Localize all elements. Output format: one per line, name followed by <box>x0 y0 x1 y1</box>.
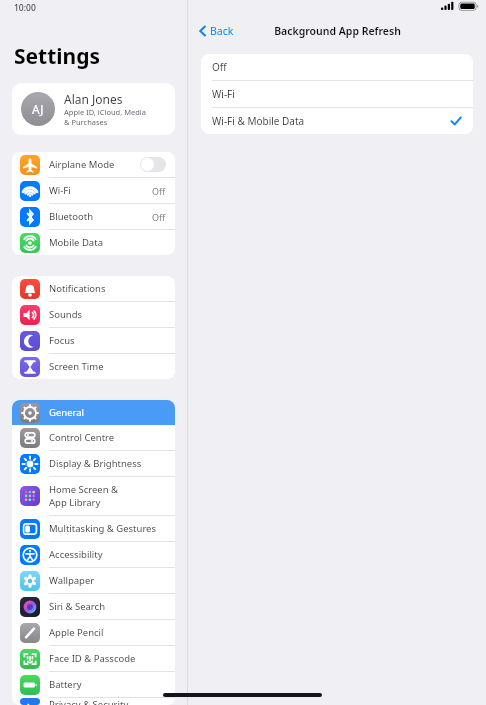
staticText: Wi-Fi <box>49 184 71 197</box>
staticText: Wi-Fi & Mobile Data <box>212 114 450 128</box>
staticText: Siri & Search <box>49 600 106 613</box>
button[interactable]: Sounds <box>12 302 175 327</box>
staticText: Off <box>212 60 462 74</box>
staticText: Wi-Fi <box>212 87 462 101</box>
staticText: Display & Brightness <box>49 457 142 470</box>
staticText: AJ <box>32 101 44 117</box>
button[interactable]: Control Centre <box>12 425 175 450</box>
button[interactable] <box>140 157 166 172</box>
button[interactable]: Siri & Search <box>12 594 175 619</box>
staticText: Accessibility <box>49 548 103 561</box>
staticText: 10:00 <box>14 2 36 14</box>
button[interactable]: Notifications <box>12 276 175 301</box>
button[interactable]: Battery <box>12 672 175 697</box>
staticText: Settings <box>14 42 101 71</box>
staticText: Bluetooth <box>49 210 94 223</box>
button[interactable]: Wi-Fi <box>12 178 175 203</box>
button[interactable]: Apple Pencil <box>12 620 175 645</box>
button[interactable]: Off <box>201 54 473 80</box>
button[interactable]: Mobile Data <box>12 230 175 255</box>
button[interactable]: Back <box>196 21 237 41</box>
staticText: Home Screen & <box>49 483 119 496</box>
button[interactable]: Focus <box>12 328 175 353</box>
staticText: Off <box>152 185 166 197</box>
staticText: Sounds <box>49 308 83 321</box>
staticText: Privacy & Security <box>49 698 129 705</box>
staticText: Wallpaper <box>49 574 95 587</box>
button[interactable]: Accessibility <box>12 542 175 567</box>
staticText: Background App Refresh <box>274 24 401 38</box>
staticText: Apple Pencil <box>49 626 104 639</box>
button[interactable]: Wi-Fi <box>201 81 473 107</box>
staticText: Battery <box>49 678 82 691</box>
button[interactable]: Face ID & Passcode <box>12 646 175 671</box>
button[interactable]: AJ <box>12 83 175 135</box>
button[interactable]: Privacy & Security <box>12 698 175 705</box>
staticText: Apple ID, iCloud, Media & Purchases <box>64 107 146 127</box>
button[interactable]: Airplane Mode <box>12 152 175 177</box>
staticText: Control Centre <box>49 431 115 444</box>
staticText: Notifications <box>49 282 106 295</box>
staticText: Off <box>152 211 166 223</box>
staticText: General <box>49 406 85 419</box>
staticText: Alan Jones <box>64 91 123 107</box>
button[interactable]: Display & Brightness <box>12 451 175 476</box>
other: Selected <box>450 115 462 127</box>
staticText: Focus <box>49 334 75 347</box>
button[interactable]: General <box>12 400 175 425</box>
staticText: Screen Time <box>49 360 104 373</box>
button[interactable]: Bluetooth <box>12 204 175 229</box>
staticText: Airplane Mode <box>49 158 115 171</box>
staticText: Face ID & Passcode <box>49 652 136 665</box>
button[interactable]: Screen Time <box>12 354 175 379</box>
staticText: App Library <box>49 496 101 509</box>
button[interactable]: Wi-Fi & Mobile Data <box>201 108 473 134</box>
button[interactable]: Home Screen & <box>12 477 175 515</box>
button[interactable]: Wallpaper <box>12 568 175 593</box>
staticText: Mobile Data <box>49 236 103 249</box>
button[interactable]: Multitasking & Gestures <box>12 516 175 541</box>
staticText: Multitasking & Gestures <box>49 522 157 535</box>
staticText: Back <box>210 24 234 38</box>
